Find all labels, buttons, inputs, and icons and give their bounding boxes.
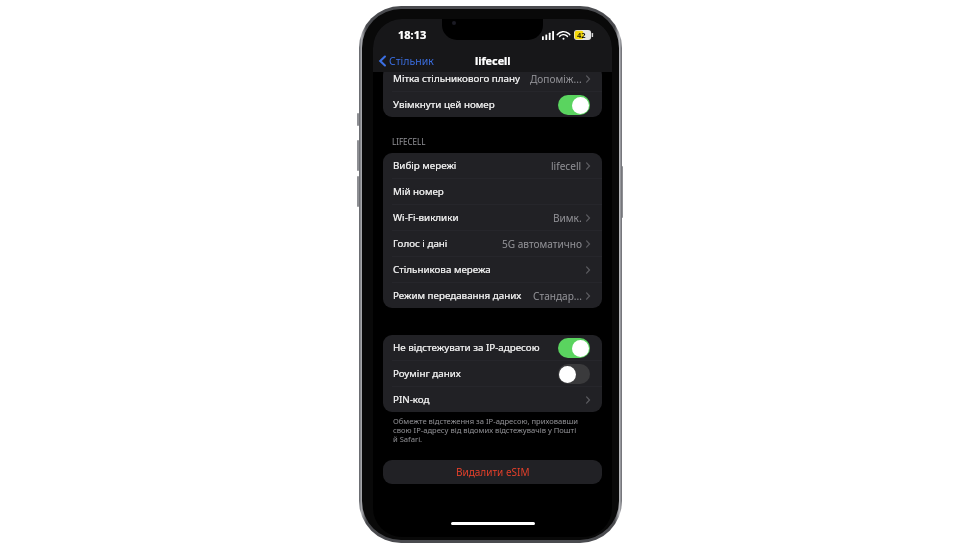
staticText: Мій номер [393,185,444,198]
staticText: 18:13 [398,27,427,42]
button[interactable]: Не відстежувати за IP-адресою [383,335,602,360]
button[interactable]: Роумінг даних, вимкнено [558,364,590,384]
button[interactable]: Стільникова мережа [383,257,602,282]
staticText: 5G автоматично [502,237,582,251]
staticText: Wi-Fi-виклики [393,211,459,224]
button[interactable]: Роумінг даних [383,361,602,386]
staticText: 42 [577,30,586,40]
button[interactable]: PIN-код [383,387,602,412]
button[interactable]: Мітка стільникового плану [383,66,602,91]
staticText: Допоміж... [530,72,582,86]
button[interactable]: Стільник [379,54,434,68]
staticText: Стільникова мережа [393,263,491,276]
staticText: PIN-код [393,393,430,406]
staticText: Обмежте відстеження за IP-адресою, прихо… [393,416,578,445]
staticText: Роумінг даних [393,367,461,380]
staticText: Стандар... [533,289,582,303]
button[interactable]: Голос і дані [383,231,602,256]
button[interactable]: Видалити eSIM [383,460,602,484]
staticText: lifecell [475,53,511,68]
staticText: Увімкнути цей номер [393,98,495,111]
button[interactable]: Режим передавання даних [383,283,602,308]
staticText: Режим передавання даних [393,289,522,302]
button[interactable]: Wi-Fi-виклики [383,205,602,230]
staticText: Голос і дані [393,237,448,250]
button[interactable]: Мій номер [383,179,602,204]
button[interactable]: Увімкнути цей номер, увімкнено [558,95,590,115]
staticText: Не відстежувати за IP-адресою [393,341,540,354]
staticText: Вимк. [553,211,582,225]
staticText: Мітка стільникового плану [393,72,520,85]
button[interactable]: Увімкнути цей номер [383,92,602,117]
staticText: lifecell [551,159,582,173]
button[interactable]: Не відстежувати за IP-адресою, увімкнено [558,338,590,358]
staticText: Стільник [389,54,434,68]
staticText: Видалити eSIM [456,465,530,479]
button[interactable]: Вибір мережі [383,153,602,178]
staticText: Вибір мережі [393,159,457,172]
staticText: LIFECELL [392,136,426,147]
